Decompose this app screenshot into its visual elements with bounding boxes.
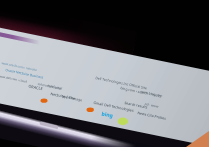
button[interactable]: Phone showing an app list (0, 0, 209, 147)
